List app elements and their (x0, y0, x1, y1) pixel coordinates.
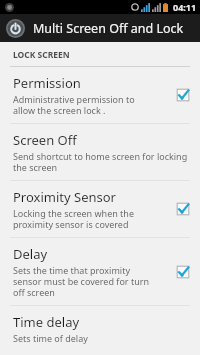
staticText: Permission (13, 74, 81, 92)
staticText: Administrative permission to allow the s… (13, 93, 135, 116)
staticText: Proximity Sensor (13, 188, 116, 206)
staticText: Locking the screen when the proximity se… (13, 207, 134, 230)
button[interactable]: Screen Off (0, 124, 200, 180)
button[interactable]: Checked (176, 88, 190, 102)
other: App icon (6, 19, 25, 38)
staticText: Time delay (13, 313, 80, 331)
button[interactable]: Checked (176, 265, 190, 279)
staticText: Multi Screen Off and Lock (33, 20, 184, 37)
staticText: Sets the time that proximity sensor must… (13, 264, 149, 298)
button[interactable]: Time delay (0, 306, 200, 351)
staticText: 04:11 (173, 1, 197, 13)
staticText: Screen Off (13, 131, 77, 149)
button[interactable]: Checked (176, 202, 190, 216)
staticText: LOCK SCREEN (13, 49, 70, 61)
button[interactable]: Proximity Sensor (0, 181, 200, 237)
button[interactable]: Permission (0, 67, 200, 123)
staticText: Send shortcut to home screen for locking… (13, 150, 188, 173)
staticText: Delay (13, 245, 48, 263)
staticText: Sets time of delay (13, 332, 88, 344)
button[interactable]: Delay (0, 238, 200, 305)
